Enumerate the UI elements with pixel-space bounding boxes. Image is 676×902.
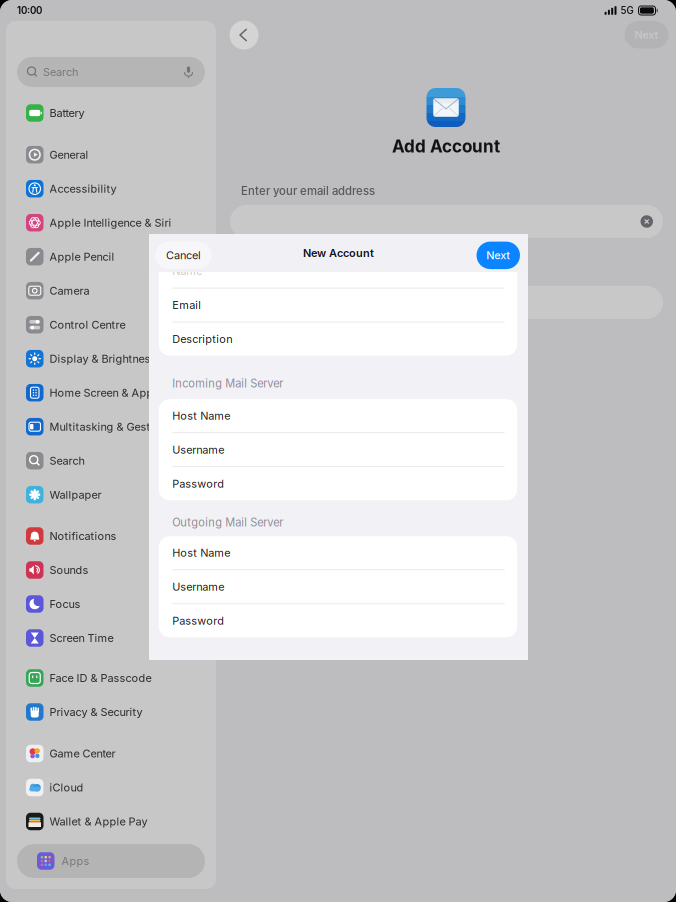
- button[interactable]: Apple Intelligence & Siri: [6, 206, 216, 240]
- staticText: Wallpaper: [49, 488, 101, 501]
- staticText: Search: [49, 454, 84, 467]
- button[interactable]: Apps: [17, 844, 205, 878]
- button[interactable]: Focus: [6, 587, 216, 621]
- button[interactable]: Screen Time: [6, 621, 216, 655]
- staticText: Sounds: [49, 563, 88, 577]
- button[interactable]: Game Center: [6, 736, 216, 770]
- button[interactable]: Display & Brightness: [6, 342, 216, 376]
- staticText: 5G: [620, 5, 633, 16]
- staticText: Password: [172, 614, 224, 627]
- staticText: Multitasking & Gestures: [49, 420, 172, 433]
- button[interactable]: General: [6, 138, 216, 172]
- staticText: Home Screen & App Library: [49, 386, 192, 399]
- button[interactable]: Home Screen & App Library: [6, 376, 216, 410]
- staticText: Next: [486, 249, 510, 262]
- staticText: Username: [172, 580, 224, 593]
- staticText: Battery: [49, 106, 84, 120]
- button[interactable]: Search: [6, 444, 216, 478]
- button[interactable]: Multitasking & Gestures: [6, 410, 216, 444]
- staticText: Cancel: [166, 249, 201, 262]
- button[interactable]: Wallpaper: [6, 478, 216, 512]
- button[interactable]: Camera: [6, 274, 216, 308]
- staticText: Focus: [49, 597, 80, 611]
- staticText: Host Name: [172, 546, 230, 559]
- button[interactable]: Notifications: [6, 519, 216, 553]
- button[interactable]: Wallet & Apple Pay: [6, 804, 216, 838]
- staticText: General: [49, 148, 88, 161]
- button[interactable]: Back: [229, 20, 258, 49]
- staticText: Search: [43, 65, 78, 79]
- button[interactable]: Accessibility: [6, 172, 216, 206]
- button[interactable]: Face ID & Passcode: [6, 661, 216, 695]
- staticText: Wallet & Apple Pay: [49, 815, 147, 828]
- staticText: Game Center: [49, 747, 115, 760]
- staticText: Face ID & Passcode: [49, 671, 151, 685]
- staticText: Display & Brightness: [49, 352, 156, 365]
- staticText: Privacy & Security: [49, 705, 142, 719]
- staticText: Host Name: [172, 409, 230, 422]
- button[interactable]: Apple Pencil: [6, 240, 216, 274]
- staticText: Notifications: [49, 529, 116, 543]
- staticText: Name: [172, 264, 202, 278]
- staticText: iCloud: [49, 781, 83, 794]
- button[interactable]: Control Centre: [6, 308, 216, 342]
- staticText: Password: [172, 477, 224, 490]
- staticText: 10:00: [17, 5, 42, 16]
- staticText: Email: [172, 298, 201, 312]
- staticText: Outgoing Mail Server: [172, 516, 283, 529]
- button[interactable]: Privacy & Security: [6, 695, 216, 729]
- staticText: Username: [172, 443, 224, 456]
- button[interactable]: Sounds: [6, 553, 216, 587]
- staticText: Apple Intelligence & Siri: [49, 216, 171, 229]
- staticText: Add Account: [392, 136, 500, 157]
- staticText: Control Centre: [49, 318, 125, 331]
- staticText: Apps: [61, 854, 89, 868]
- staticText: Apple Pencil: [49, 250, 114, 263]
- staticText: New Account: [303, 246, 374, 260]
- button[interactable]: Battery: [6, 96, 216, 130]
- staticText: Enter your email address: [241, 184, 375, 198]
- button[interactable]: Next: [624, 21, 668, 48]
- button[interactable]: Next: [476, 242, 520, 269]
- button[interactable]: Search: [17, 57, 205, 87]
- button[interactable]: Cancel: [155, 242, 212, 269]
- staticText: Camera: [49, 284, 89, 297]
- staticText: Incoming Mail Server: [172, 377, 283, 390]
- staticText: Description: [172, 332, 232, 346]
- button[interactable]: iCloud: [6, 770, 216, 804]
- staticText: Next: [634, 28, 658, 41]
- staticText: Screen Time: [49, 631, 113, 645]
- staticText: Accessibility: [49, 182, 116, 195]
